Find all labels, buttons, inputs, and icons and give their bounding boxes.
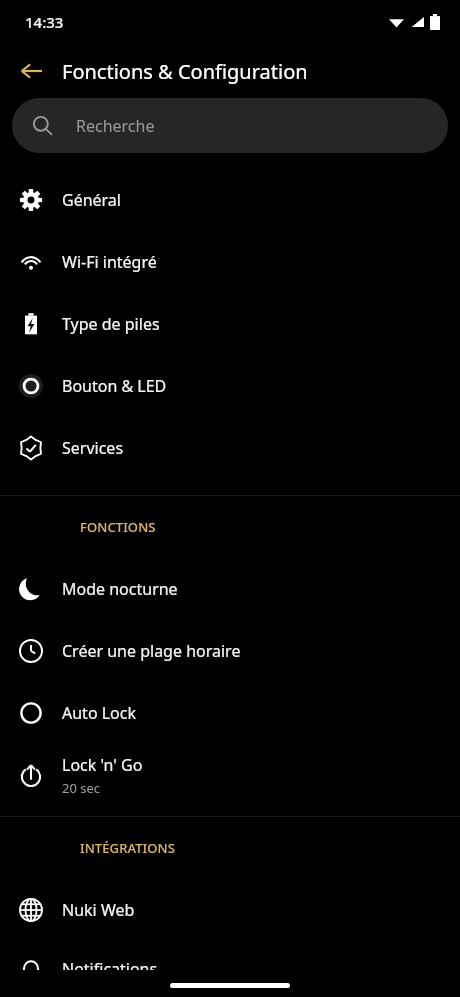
button[interactable]: Type de piles: [0, 293, 460, 355]
button[interactable]: Général: [0, 169, 460, 231]
button[interactable]: Lock 'n' Go: [0, 744, 460, 806]
staticText: Auto Lock: [62, 702, 137, 724]
staticText: Mode nocturne: [62, 578, 178, 600]
button[interactable]: Recherche: [12, 98, 448, 153]
staticText: Type de piles: [62, 313, 160, 335]
staticText: Lock 'n' Go: [62, 754, 143, 776]
staticText: Wi-Fi intégré: [62, 251, 157, 273]
staticText: Bouton & LED: [62, 375, 167, 397]
staticText: INTÉGRATIONS: [80, 839, 175, 857]
staticText: Général: [62, 189, 121, 211]
staticText: 20 sec: [62, 779, 101, 797]
staticText: Fonctions & Configuration: [62, 58, 308, 85]
button[interactable]: Auto Lock: [0, 682, 460, 744]
staticText: 14:33: [25, 12, 64, 32]
staticText: Notifications: [62, 958, 158, 980]
button[interactable]: Notifications: [0, 941, 460, 997]
button[interactable]: Mode nocturne: [0, 558, 460, 620]
staticText: Créer une plage horaire: [62, 640, 241, 662]
button[interactable]: Back: [0, 44, 62, 98]
staticText: Services: [62, 437, 124, 459]
button[interactable]: Créer une plage horaire: [0, 620, 460, 682]
button[interactable]: Nuki Web: [0, 879, 460, 941]
staticText: Nuki Web: [62, 899, 135, 921]
button[interactable]: Wi-Fi intégré: [0, 231, 460, 293]
staticText: FONCTIONS: [80, 518, 156, 536]
button[interactable]: Bouton & LED: [0, 355, 460, 417]
button[interactable]: Services: [0, 417, 460, 479]
staticText: Recherche: [76, 115, 155, 137]
